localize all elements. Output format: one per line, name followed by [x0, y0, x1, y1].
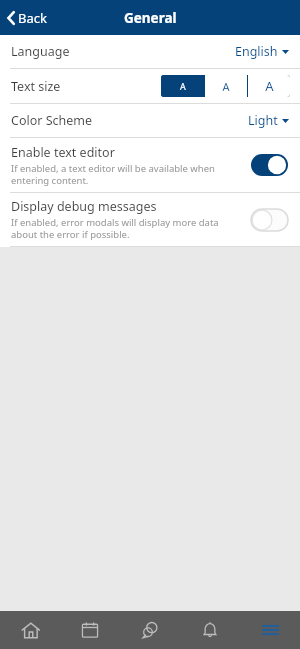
button[interactable]: Color Scheme: [0, 104, 300, 137]
button[interactable]: A: [161, 75, 204, 97]
button[interactable]: Menu: [240, 611, 300, 649]
button[interactable]: Light: [247, 108, 290, 133]
button[interactable]: Toggle off: [251, 209, 288, 231]
staticText: Text size: [11, 78, 61, 95]
staticText: A: [222, 79, 230, 94]
staticText: General: [124, 9, 177, 27]
button[interactable]: Messages: [120, 611, 180, 649]
staticText: English: [235, 43, 278, 60]
button[interactable]: Back: [0, 4, 57, 32]
staticText: Light: [248, 112, 278, 129]
staticText: A: [180, 80, 186, 92]
staticText: Color Scheme: [11, 112, 93, 129]
button[interactable]: Text size: [0, 69, 300, 103]
button[interactable]: Language: [0, 35, 300, 68]
button[interactable]: Notifications: [180, 611, 240, 649]
button[interactable]: Calendar: [60, 611, 120, 649]
button[interactable]: Toggle on: [251, 154, 288, 176]
staticText: If enabled, error modals will display mo…: [11, 216, 245, 241]
button[interactable]: Enable text editor: [0, 138, 300, 192]
staticText: A: [265, 77, 274, 95]
button[interactable]: A: [205, 75, 247, 97]
button[interactable]: English: [234, 39, 290, 64]
staticText: Language: [11, 43, 70, 60]
button[interactable]: Display debug messages: [0, 193, 300, 246]
staticText: If enabled, a text editor will be availa…: [11, 162, 245, 187]
staticText: Display debug messages: [11, 198, 157, 215]
staticText: Enable text editor: [11, 144, 115, 161]
button[interactable]: A: [248, 75, 290, 97]
staticText: Back: [18, 9, 47, 27]
button[interactable]: Home: [0, 611, 60, 649]
